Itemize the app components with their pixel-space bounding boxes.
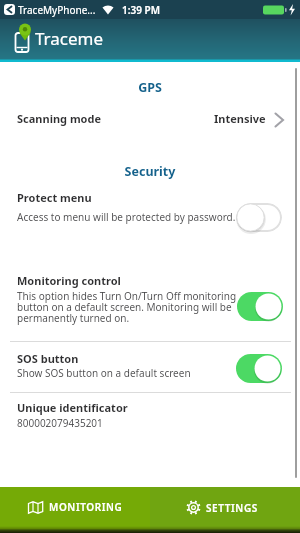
staticText: GPS — [0, 79, 300, 96]
staticText: Unique identificator — [17, 400, 128, 415]
staticText: Intensive — [214, 111, 266, 126]
button[interactable]: Monitoring control — [0, 272, 300, 338]
button[interactable]: SETTINGS — [150, 487, 300, 533]
staticText: MONITORING — [49, 500, 123, 514]
button[interactable] — [237, 292, 283, 321]
staticText: Security — [0, 163, 300, 180]
staticText: Traceme — [35, 27, 104, 50]
staticText: Monitoring control — [17, 273, 121, 288]
staticText: Scanning mode — [17, 111, 101, 126]
button[interactable]: Protect menu — [0, 189, 300, 239]
staticText: 800002079435201 — [17, 416, 103, 430]
staticText: This option hides Turn On/Turn Off monit… — [17, 289, 237, 325]
button[interactable]: MONITORING — [0, 487, 150, 533]
staticText: Show SOS button on a default screen — [17, 366, 191, 380]
staticText: TraceMyPhone... — [18, 3, 96, 17]
staticText: Protect menu — [17, 190, 92, 205]
staticText: Access to menu will be protected by pass… — [17, 210, 236, 224]
button[interactable]: Scanning mode — [0, 106, 300, 140]
staticText: SOS button — [17, 351, 79, 366]
staticText: SETTINGS — [206, 501, 258, 515]
staticText: 1:39 PM — [122, 3, 160, 17]
button[interactable] — [236, 203, 282, 232]
button[interactable] — [236, 354, 282, 383]
button[interactable]: SOS button — [0, 350, 300, 390]
